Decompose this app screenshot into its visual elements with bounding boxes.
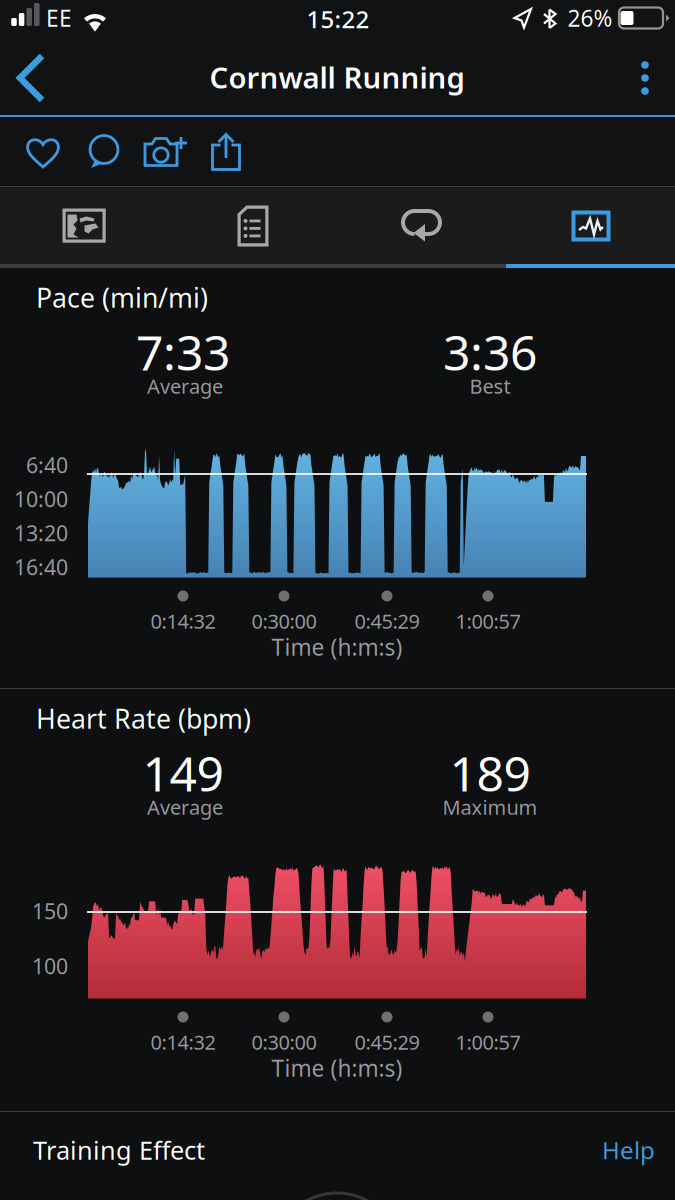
- staticText: 0:45:29: [354, 608, 419, 634]
- staticText: Cornwall Running: [209, 57, 464, 96]
- staticText: 0:14:32: [150, 1029, 215, 1055]
- staticText: Help: [602, 1134, 655, 1166]
- button[interactable]: Add photo: [134, 117, 196, 187]
- staticText: 1:00:57: [455, 608, 520, 634]
- staticText: Average: [147, 794, 223, 820]
- staticText: Time (h:m:s): [271, 1053, 402, 1083]
- staticText: 150: [32, 897, 68, 925]
- staticText: Best: [469, 373, 510, 399]
- staticText: Heart Rate (bpm): [36, 701, 251, 736]
- staticText: 10:00: [14, 485, 68, 513]
- staticText: 13:20: [14, 519, 68, 547]
- button[interactable]: Laps: [338, 187, 506, 265]
- staticText: 16:40: [14, 553, 68, 581]
- button[interactable]: Like: [14, 117, 72, 187]
- staticText: EE: [46, 3, 72, 33]
- button[interactable]: Comment: [75, 117, 133, 187]
- staticText: Maximum: [442, 794, 537, 820]
- staticText: Time (h:m:s): [271, 632, 402, 662]
- staticText: 15:22: [306, 3, 369, 35]
- staticText: 0:45:29: [354, 1029, 419, 1055]
- button[interactable]: More options: [615, 40, 675, 116]
- staticText: 0:30:00: [251, 1029, 316, 1055]
- staticText: 1:00:57: [455, 1029, 520, 1055]
- staticText: 100: [32, 952, 68, 980]
- staticText: 7:33: [136, 320, 230, 384]
- button[interactable]: Share: [197, 117, 255, 187]
- staticText: Training Effect: [33, 1133, 205, 1167]
- button[interactable]: Training Effect: [0, 1112, 675, 1188]
- staticText: 6:40: [26, 451, 68, 479]
- button[interactable]: Back: [0, 40, 72, 116]
- staticText: 26%: [567, 3, 612, 33]
- button[interactable]: Map: [0, 187, 168, 265]
- staticText: 0:14:32: [150, 608, 215, 634]
- button[interactable]: Charts: [507, 187, 675, 265]
- button[interactable]: Details: [169, 187, 337, 265]
- staticText: 3:36: [443, 320, 537, 384]
- staticText: 0:30:00: [251, 608, 316, 634]
- staticText: 149: [142, 741, 223, 805]
- staticText: 189: [449, 741, 530, 805]
- staticText: Average: [147, 373, 223, 399]
- staticText: Pace (min/mi): [36, 280, 208, 315]
